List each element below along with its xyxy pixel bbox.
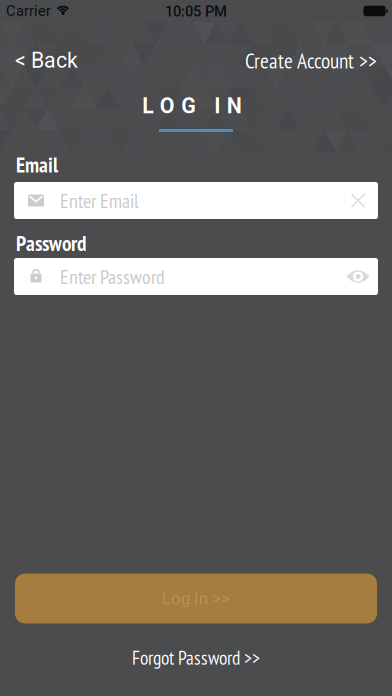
staticText: Log In >> <box>162 589 230 608</box>
button[interactable]: Create Account >> <box>245 47 377 74</box>
staticText: Create Account >> <box>245 47 377 74</box>
button[interactable]: < Back <box>15 48 78 73</box>
button[interactable]: Forgot Password >> <box>132 645 260 670</box>
button[interactable] <box>338 180 378 220</box>
button[interactable]: Log In >> <box>15 573 377 623</box>
staticText: Enter Email <box>60 188 139 213</box>
staticText: Password <box>16 229 86 257</box>
button[interactable] <box>338 256 378 296</box>
staticText: LOG IN <box>142 93 242 118</box>
staticText: 10:05 PM <box>165 3 227 20</box>
staticText: < Back <box>15 48 78 73</box>
button[interactable]: Enter Email <box>14 182 378 219</box>
staticText: Enter Password <box>60 264 165 289</box>
staticText: Carrier <box>6 2 51 20</box>
staticText: Email <box>16 151 58 178</box>
staticText: Forgot Password >> <box>132 645 260 670</box>
button[interactable]: Enter Password <box>14 258 378 295</box>
